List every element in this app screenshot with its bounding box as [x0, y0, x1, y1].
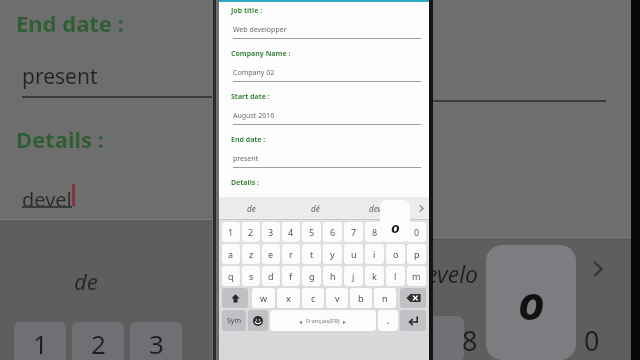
button[interactable]: e [262, 244, 280, 264]
staticText: o [391, 217, 400, 237]
button[interactable]: i [365, 244, 384, 264]
button[interactable]: x [277, 288, 300, 308]
staticText: k [372, 270, 377, 282]
staticText: o [393, 248, 399, 260]
button[interactable]: dé [283, 197, 348, 219]
button[interactable]: d [262, 266, 280, 286]
button[interactable]: Emoji [248, 310, 268, 331]
staticText: o [518, 271, 545, 334]
button[interactable]: j [344, 266, 363, 286]
staticText: 5 [309, 226, 315, 238]
staticText: 0 [414, 226, 420, 238]
staticText: Sym [227, 316, 241, 326]
staticText: a [228, 248, 234, 260]
button[interactable]: 3 [262, 222, 280, 242]
button[interactable]: More suggestions [413, 197, 429, 219]
staticText: p [414, 248, 420, 260]
staticText: End date : [16, 8, 124, 38]
button[interactable]: 6 [323, 222, 342, 242]
staticText: s [249, 270, 254, 282]
button[interactable]: 9 [386, 222, 405, 242]
staticText: Company Name : [231, 49, 291, 59]
button[interactable]: 5 [302, 222, 321, 242]
staticText: g [309, 270, 315, 282]
button[interactable]: Company 02 [227, 68, 421, 82]
button[interactable]: y [323, 244, 342, 264]
button[interactable]: l [386, 266, 405, 286]
staticText: . [387, 315, 390, 326]
staticText: present [233, 154, 259, 164]
button[interactable]: 0 [407, 222, 426, 242]
button[interactable]: Enter [400, 310, 426, 331]
staticText: f [289, 270, 293, 282]
button[interactable]: 1 [222, 222, 240, 242]
staticText: n [382, 292, 388, 304]
staticText: Company 02 [233, 68, 275, 78]
staticText: q [228, 270, 234, 282]
button[interactable]: u [344, 244, 363, 264]
button[interactable]: g [302, 266, 321, 286]
staticText: 2 [248, 226, 254, 238]
button[interactable]: k [365, 266, 384, 286]
button[interactable]: ◂ [270, 310, 376, 331]
staticText: i [373, 248, 376, 260]
button[interactable]: c [302, 288, 324, 308]
staticText: j [352, 270, 355, 282]
button[interactable]: w [252, 288, 275, 308]
button[interactable]: f [282, 266, 300, 286]
staticText: Details : [231, 178, 260, 188]
button[interactable]: present [227, 154, 421, 168]
staticText: x [286, 292, 291, 304]
staticText: m [412, 270, 421, 282]
button[interactable]: August 2016 [227, 111, 421, 125]
staticText: de [247, 203, 256, 214]
button[interactable]: 4 [282, 222, 300, 242]
button[interactable]: v [326, 288, 348, 308]
staticText: 1 [228, 226, 234, 238]
staticText: devel [22, 186, 72, 213]
button[interactable]: h [323, 266, 342, 286]
staticText: d [268, 270, 274, 282]
button[interactable]: develo [348, 197, 413, 219]
button[interactable]: z [242, 244, 260, 264]
staticText: z [249, 248, 254, 260]
button[interactable]: o [386, 244, 405, 264]
button[interactable]: t [302, 244, 321, 264]
staticText: e [268, 248, 274, 260]
staticText: de [74, 266, 98, 296]
staticText: 2 [91, 326, 106, 360]
button[interactable]: de [219, 197, 283, 219]
button[interactable]: m [407, 266, 426, 286]
staticText: Details : [16, 124, 105, 154]
button[interactable]: Web developper [227, 25, 421, 39]
staticText: 7 [351, 226, 357, 238]
button[interactable]: a [222, 244, 240, 264]
button[interactable]: 2 [242, 222, 260, 242]
staticText: b [358, 292, 364, 304]
button[interactable]: r [282, 244, 300, 264]
staticText: w [260, 292, 268, 304]
staticText: l [394, 270, 397, 282]
button[interactable]: q [222, 266, 240, 286]
staticText: t [310, 248, 314, 260]
staticText: c [311, 292, 316, 304]
button[interactable]: p [407, 244, 426, 264]
staticText: present [22, 62, 98, 91]
button[interactable]: s [242, 266, 260, 286]
staticText: 8 [462, 322, 478, 359]
staticText: y [330, 248, 335, 260]
staticText: v [335, 292, 340, 304]
staticText: u [351, 248, 357, 260]
staticText: 8 [372, 226, 378, 238]
button[interactable]: b [350, 288, 372, 308]
button[interactable]: 8 [365, 222, 384, 242]
button[interactable]: Shift [222, 288, 248, 308]
button[interactable]: Backspace [400, 288, 426, 308]
staticText: h [330, 270, 336, 282]
button[interactable]: Sym [222, 310, 246, 331]
button[interactable]: n [374, 288, 396, 308]
staticText: develo [369, 203, 392, 214]
staticText: 1 [33, 326, 48, 360]
button[interactable]: 7 [344, 222, 363, 242]
button[interactable]: . [378, 310, 398, 331]
